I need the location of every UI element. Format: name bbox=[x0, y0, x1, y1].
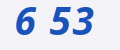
staticText: 6 bbox=[14, 0, 35, 46]
staticText: 3 bbox=[72, 0, 93, 46]
staticText: 5 bbox=[49, 0, 70, 46]
